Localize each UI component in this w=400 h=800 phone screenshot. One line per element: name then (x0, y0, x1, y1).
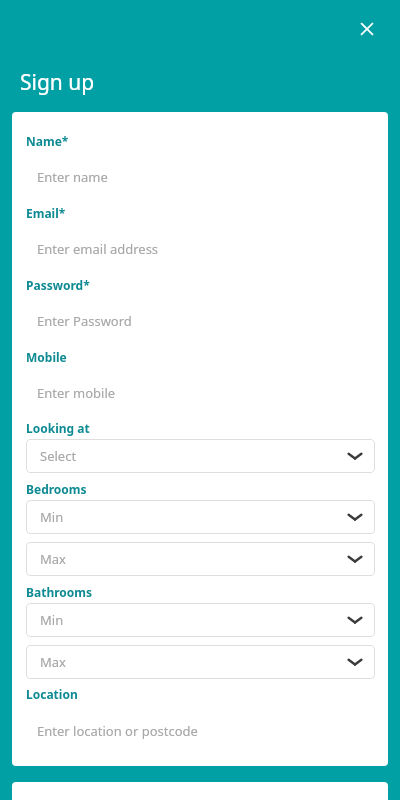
staticText: Min (40, 508, 64, 526)
button[interactable]: Enter name (26, 161, 375, 189)
staticText: Password* (26, 277, 90, 293)
staticText: Min (40, 611, 64, 629)
button[interactable]: Min (26, 500, 375, 534)
staticText: Looking at (26, 420, 90, 436)
staticText: Select (40, 447, 77, 465)
staticText: Enter mobile (37, 384, 116, 402)
button[interactable]: Close (352, 14, 382, 44)
staticText: Enter name (37, 168, 108, 186)
staticText: Enter email address (37, 240, 159, 258)
button[interactable]: Enter Password (26, 305, 375, 333)
staticText: Email* (26, 205, 66, 221)
staticText: Enter location or postcode (37, 722, 198, 740)
button[interactable]: Enter email address (26, 233, 375, 261)
button[interactable]: Max (26, 645, 375, 679)
staticText: Bedrooms (26, 481, 87, 497)
button[interactable]: Select (26, 439, 375, 473)
staticText: Location (26, 686, 78, 702)
button[interactable]: Enter location or postcode (26, 715, 375, 743)
staticText: Sign up (20, 68, 95, 97)
staticText: Bathrooms (26, 584, 93, 600)
staticText: Name* (26, 133, 69, 149)
staticText: Max (40, 550, 66, 568)
staticText: Max (40, 653, 66, 671)
button[interactable]: Max (26, 542, 375, 576)
staticText: Enter Password (37, 312, 132, 330)
staticText: Mobile (26, 349, 67, 365)
button[interactable]: Min (26, 603, 375, 637)
button[interactable]: Enter mobile (26, 377, 375, 405)
